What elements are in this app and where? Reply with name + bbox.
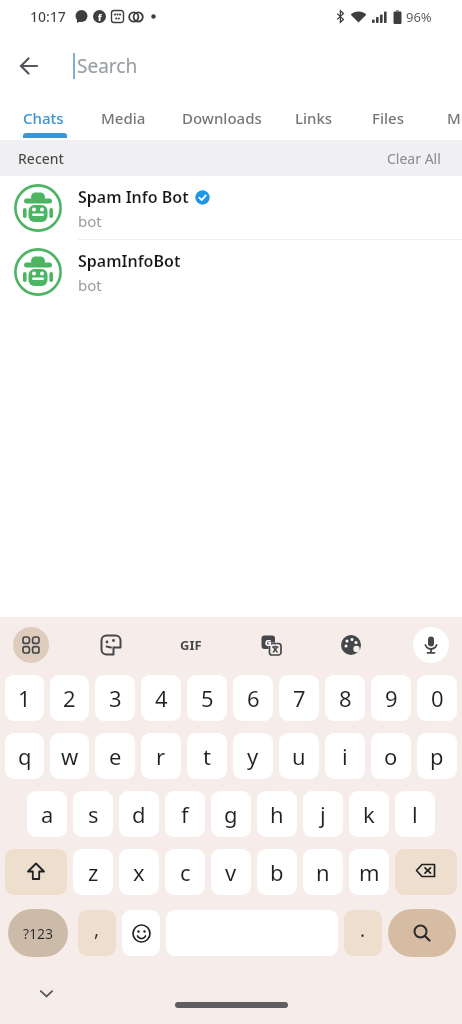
button[interactable]: , (78, 910, 116, 956)
button[interactable]: p (417, 733, 457, 779)
button[interactable]: 6 (233, 675, 273, 721)
button[interactable]: 5 (187, 675, 227, 721)
button[interactable] (13, 50, 45, 82)
staticText: u (292, 741, 306, 771)
button[interactable]: Links (295, 91, 333, 140)
staticText: 3 (109, 683, 122, 713)
button[interactable]: v (211, 849, 251, 895)
button[interactable]: g (211, 791, 251, 837)
button[interactable]: f (165, 791, 205, 837)
staticText: bot (78, 275, 102, 295)
button[interactable]: 0 (417, 675, 457, 721)
staticText: n (316, 857, 330, 887)
staticText: Chats (23, 108, 64, 128)
button[interactable]: l (395, 791, 435, 837)
button[interactable] (30, 978, 62, 1010)
button[interactable]: k (349, 791, 389, 837)
button[interactable]: . (344, 910, 382, 956)
button[interactable]: Files (372, 91, 404, 140)
button[interactable] (93, 627, 129, 663)
button[interactable]: w (50, 733, 89, 779)
button[interactable]: 9 (371, 675, 411, 721)
button[interactable]: SpamInfoBot (0, 240, 462, 304)
staticText: e (109, 741, 122, 771)
button[interactable]: 8 (325, 675, 365, 721)
button[interactable] (5, 849, 67, 895)
staticText: j (320, 799, 326, 829)
button[interactable]: r (141, 733, 181, 779)
button[interactable]: ?123 (8, 909, 68, 957)
button[interactable]: Clear All (387, 140, 462, 176)
staticText: y (247, 741, 259, 771)
button[interactable]: t (187, 733, 227, 779)
staticText: Spam Info Bot (78, 186, 189, 208)
staticText: c (180, 857, 191, 887)
button[interactable]: Spam Info Bot (0, 176, 462, 240)
button[interactable]: u (279, 733, 319, 779)
staticText: 4 (155, 683, 168, 713)
button[interactable]: d (119, 791, 159, 837)
button[interactable]: 1 (5, 675, 44, 721)
staticText: 96% (406, 8, 432, 26)
staticText: h (270, 799, 284, 829)
staticText: bot (78, 211, 102, 231)
staticText: p (430, 741, 444, 771)
staticText: G (265, 636, 272, 648)
staticText: f (181, 799, 189, 829)
staticText: 7 (293, 683, 306, 713)
button[interactable]: i (325, 733, 365, 779)
staticText: i (342, 741, 348, 771)
button[interactable]: q (5, 733, 44, 779)
button[interactable]: s (73, 791, 113, 837)
button[interactable]: e (95, 733, 135, 779)
button[interactable] (122, 910, 160, 956)
button[interactable]: n (303, 849, 343, 895)
button[interactable]: Music (447, 91, 462, 140)
staticText: k (363, 799, 375, 829)
staticText: Recent (18, 149, 64, 168)
staticText: m (359, 857, 380, 887)
button[interactable]: Chats (23, 91, 67, 140)
button[interactable]: 2 (50, 675, 89, 721)
staticText: 2 (63, 683, 76, 713)
button[interactable]: GIF (173, 627, 209, 663)
button[interactable]: y (233, 733, 273, 779)
staticText: Files (372, 108, 404, 128)
staticText: s (88, 799, 99, 829)
staticText: 1 (18, 683, 31, 713)
button[interactable]: j (303, 791, 343, 837)
button[interactable]: Downloads (182, 91, 262, 140)
button[interactable]: z (73, 849, 113, 895)
button[interactable]: 4 (141, 675, 181, 721)
button[interactable]: b (257, 849, 297, 895)
button[interactable] (13, 627, 49, 663)
button[interactable]: a (27, 791, 67, 837)
staticText: z (88, 857, 99, 887)
staticText: Music (447, 108, 462, 128)
button[interactable]: o (371, 733, 411, 779)
button[interactable] (333, 627, 369, 663)
staticText: r (156, 741, 166, 771)
button[interactable] (388, 909, 456, 957)
staticText: t (203, 741, 211, 771)
button[interactable]: 7 (279, 675, 319, 721)
staticText: SpamInfoBot (78, 250, 181, 272)
button[interactable]: c (165, 849, 205, 895)
staticText: g (224, 799, 238, 829)
button[interactable]: m (349, 849, 389, 895)
staticText: 9 (385, 683, 398, 713)
staticText: f (98, 11, 102, 23)
staticText: w (61, 741, 79, 771)
button[interactable] (413, 627, 449, 663)
button[interactable] (395, 849, 457, 895)
button[interactable]: Media (101, 91, 146, 140)
button[interactable]: G (253, 627, 289, 663)
button[interactable]: x (119, 849, 159, 895)
button[interactable]: h (257, 791, 297, 837)
button[interactable]: 3 (95, 675, 135, 721)
staticText: q (18, 741, 32, 771)
staticText: 10:17 (30, 7, 66, 26)
staticText: Search (77, 53, 138, 79)
staticText: 0 (431, 683, 444, 713)
